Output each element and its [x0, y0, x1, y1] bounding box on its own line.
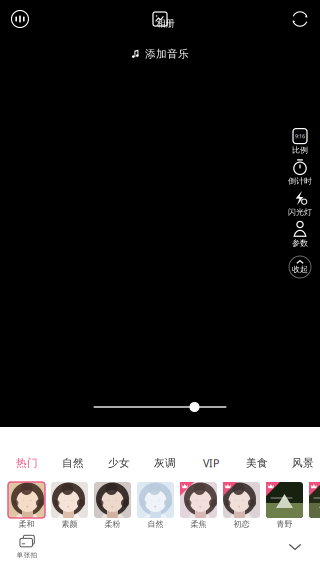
button[interactable]: 青野 — [263, 482, 306, 528]
staticText: 美食 — [246, 456, 268, 469]
staticText: 素颜 — [61, 519, 77, 529]
button[interactable]: 9:16 — [283, 126, 317, 157]
button[interactable]: 美食 — [234, 453, 280, 473]
staticText: 少女 — [108, 456, 130, 469]
button[interactable]: 少女 — [96, 453, 142, 473]
button[interactable]: 柔焦 — [177, 482, 220, 528]
button[interactable]: 添加音乐 — [131, 47, 189, 61]
button[interactable]: 参数 — [283, 219, 317, 250]
button[interactable]: 柔粉 — [91, 482, 134, 528]
button[interactable]: 素颜 — [48, 482, 91, 528]
button[interactable]: 单张拍 — [8, 533, 46, 561]
staticText: VIP — [203, 456, 219, 470]
button[interactable]: 收起 — [286, 253, 314, 281]
button[interactable]: 初恋 — [220, 482, 263, 528]
staticText: 自然 — [62, 456, 84, 469]
button[interactable]: Beauty settings — [0, 0, 40, 38]
staticText: 初恋 — [233, 519, 249, 529]
button[interactable]: 山系 — [306, 482, 320, 528]
staticText: 倒计时 — [288, 176, 312, 186]
button[interactable]: 热门 — [4, 453, 50, 473]
staticText: 风景 — [292, 456, 314, 469]
button[interactable]: 相册 — [138, 0, 182, 38]
button[interactable]: 倒计时 — [283, 157, 317, 188]
button[interactable]: 闪光灯 — [283, 188, 317, 219]
staticText: 柔和 — [18, 519, 34, 529]
button[interactable]: Collapse — [278, 533, 312, 561]
staticText: 添加音乐 — [145, 47, 189, 60]
staticText: 柔焦 — [190, 519, 206, 529]
button[interactable]: 柔和 — [5, 482, 48, 528]
button[interactable]: 自然 — [134, 482, 177, 528]
staticText: 热门 — [16, 456, 38, 469]
staticText: 收起 — [292, 264, 308, 274]
button[interactable]: Flip camera — [280, 0, 320, 38]
button[interactable]: 灰调 — [142, 453, 188, 473]
staticText: 9:16 — [295, 132, 305, 140]
staticText: 单张拍 — [16, 551, 37, 559]
staticText: 比例 — [292, 145, 308, 155]
staticText: 相册 — [156, 18, 174, 29]
staticText: 青野 — [276, 519, 292, 529]
staticText: 参数 — [292, 238, 308, 248]
button[interactable]: 自然 — [50, 453, 96, 473]
button[interactable]: VIP — [188, 453, 234, 473]
staticText: 自然 — [147, 519, 163, 529]
staticText: 灰调 — [154, 456, 176, 469]
staticText: 柔粉 — [104, 519, 120, 529]
button[interactable]: 风景 — [280, 453, 320, 473]
staticText: 闪光灯 — [288, 207, 312, 217]
